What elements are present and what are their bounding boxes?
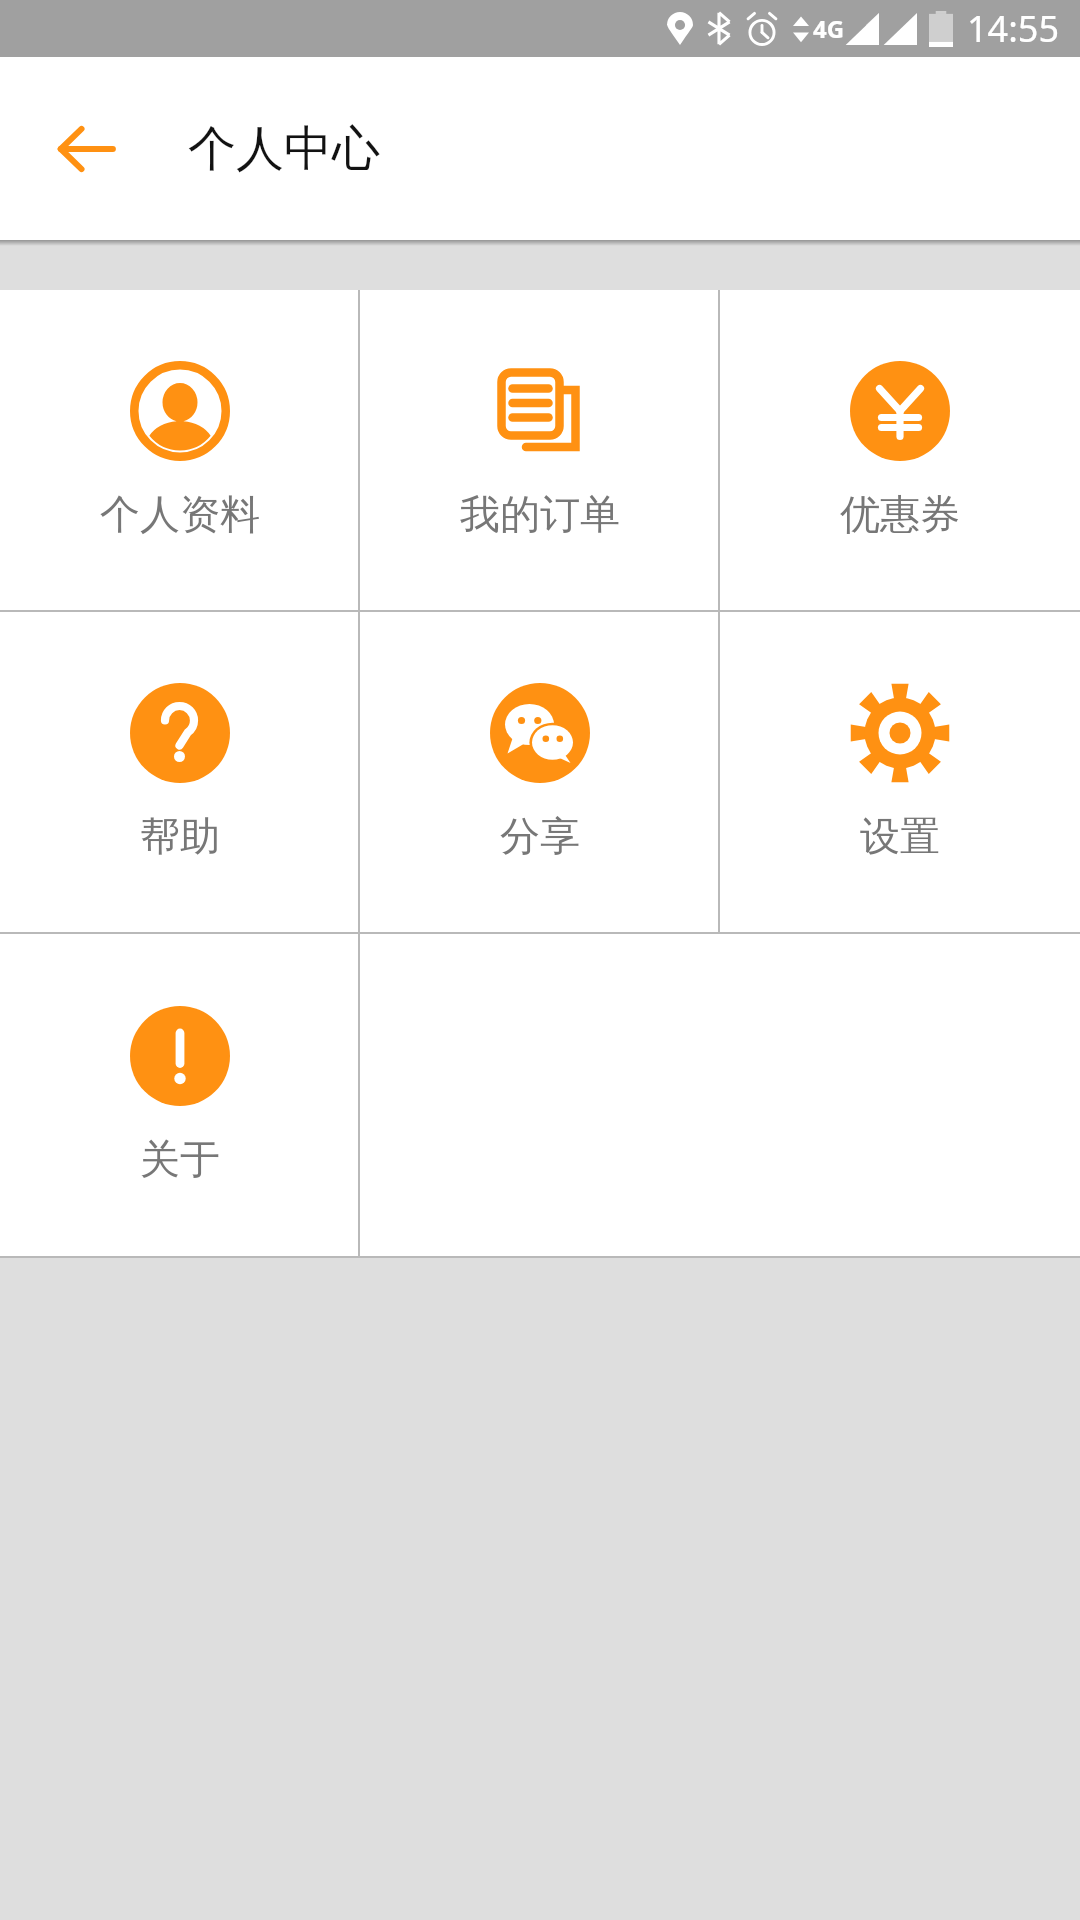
button[interactable]: 优惠券 (720, 290, 1080, 610)
button[interactable]: 返回 (38, 101, 134, 197)
staticText: 优惠券 (840, 489, 960, 539)
button[interactable]: 分享 (360, 612, 720, 932)
staticText: 帮助 (140, 811, 220, 861)
staticText: 分享 (500, 811, 580, 861)
staticText: 关于 (140, 1134, 220, 1184)
staticText: 个人资料 (100, 489, 260, 539)
button[interactable]: 关于 (0, 934, 360, 1256)
button[interactable]: 我的订单 (360, 290, 720, 610)
staticText: 我的订单 (460, 489, 620, 539)
staticText: 14:55 (967, 4, 1060, 53)
staticText: 设置 (860, 811, 940, 861)
staticText: 4G (813, 12, 845, 45)
staticText: 个人中心 (188, 119, 380, 179)
button[interactable]: 设置 (720, 612, 1080, 932)
button[interactable]: 帮助 (0, 612, 360, 932)
button[interactable]: 个人资料 (0, 290, 360, 610)
